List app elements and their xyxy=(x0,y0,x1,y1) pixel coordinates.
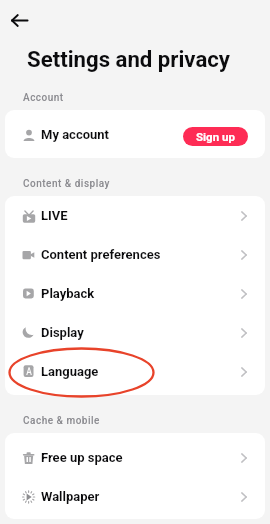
button[interactable]: Content preferences xyxy=(5,235,265,274)
button[interactable]: My account xyxy=(5,110,265,158)
staticText: Language xyxy=(41,364,99,379)
staticText: Content preferences xyxy=(41,247,161,262)
button[interactable]: Free up space xyxy=(5,438,265,477)
staticText: Cache & mobile xyxy=(23,415,100,427)
staticText: Wallpaper xyxy=(41,489,100,504)
button[interactable]: Language xyxy=(5,352,265,391)
staticText: Free up space xyxy=(41,450,123,465)
button[interactable]: Display xyxy=(5,313,265,352)
staticText: Settings and privacy xyxy=(27,46,231,72)
staticText: Playback xyxy=(41,286,95,301)
staticText: Content & display xyxy=(23,178,110,190)
staticText: Sign up xyxy=(196,130,235,143)
staticText: LIVE xyxy=(41,208,68,223)
button[interactable]: LIVE xyxy=(5,196,265,235)
button[interactable]: Back xyxy=(7,8,31,32)
button[interactable]: Sign up xyxy=(183,127,248,146)
staticText: My account xyxy=(41,127,109,142)
button[interactable]: Playback xyxy=(5,274,265,313)
button[interactable]: Wallpaper xyxy=(5,477,265,516)
staticText: Display xyxy=(41,325,84,340)
staticText: Account xyxy=(23,92,64,104)
